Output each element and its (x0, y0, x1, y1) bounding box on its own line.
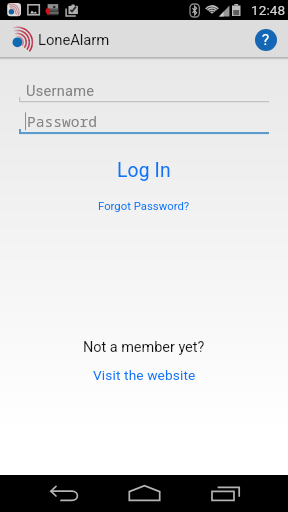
button[interactable]: Log In (0, 159, 288, 182)
staticText: 12:48 (251, 2, 286, 18)
staticText: Visit the website (93, 367, 196, 383)
button[interactable]: Back (42, 475, 86, 512)
staticText: Password (27, 111, 98, 131)
staticText: Forgot Password? (98, 200, 190, 213)
button[interactable]: Forgot Password? (0, 200, 288, 213)
button[interactable]: Help (255, 29, 277, 51)
staticText: Username (26, 82, 95, 99)
button[interactable]: Recent apps (203, 475, 247, 512)
button[interactable]: Visit the website (0, 367, 288, 383)
button[interactable]: Password (19, 108, 269, 138)
button[interactable]: Home (122, 475, 166, 512)
staticText: LoneAlarm (38, 31, 110, 48)
staticText: Log In (117, 159, 171, 182)
staticText: ? (262, 31, 270, 49)
staticText: Not a member yet? (83, 339, 205, 356)
button[interactable]: Username (19, 77, 269, 107)
